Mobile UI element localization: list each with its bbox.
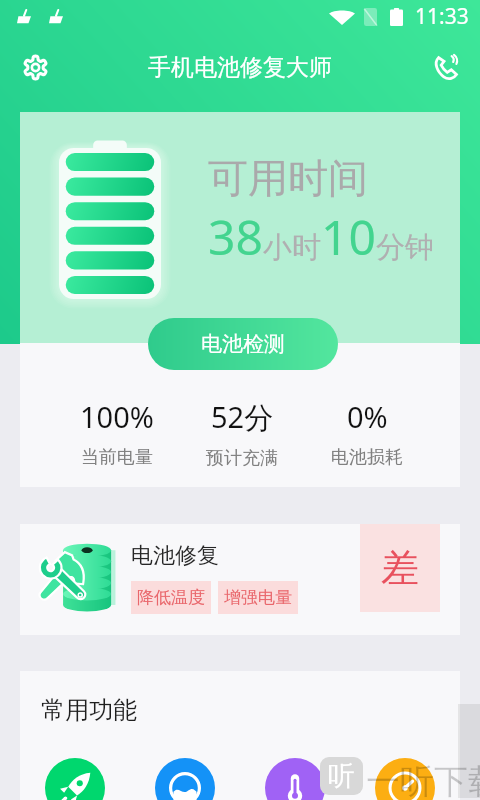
button[interactable]: Cool down	[265, 758, 325, 800]
button[interactable]: Boost	[45, 758, 105, 800]
staticText: 预计充满	[206, 447, 278, 470]
button[interactable]: Call	[422, 44, 468, 90]
button[interactable]: 电池检测	[148, 318, 338, 370]
staticText: 10	[321, 204, 376, 269]
staticText: 52分	[211, 397, 274, 437]
staticText: 100%	[80, 397, 154, 436]
staticText: 分钟	[376, 229, 434, 266]
staticText: 电池修复	[131, 542, 219, 570]
staticText: 差	[381, 544, 419, 592]
staticText: 当前电量	[81, 446, 153, 469]
staticText: 小时	[263, 229, 321, 266]
button[interactable]: Clean	[155, 758, 215, 800]
staticText: 听	[328, 759, 355, 793]
staticText: 0%	[347, 397, 388, 436]
staticText: 电池检测	[201, 331, 285, 357]
staticText: 38	[208, 204, 263, 269]
staticText: 电池损耗	[331, 446, 403, 469]
button[interactable]: 电池修复	[20, 524, 460, 635]
button[interactable]: Speed test	[375, 758, 435, 800]
button[interactable]: Settings	[12, 44, 58, 90]
staticText: 手机电池修复大师	[148, 53, 332, 82]
staticText: 可用时间	[208, 153, 368, 203]
staticText: 降低温度	[137, 587, 205, 608]
staticText: 常用功能	[41, 695, 137, 725]
staticText: 增强电量	[224, 587, 292, 608]
staticText: 一听下载	[366, 760, 480, 800]
staticText: 11:33	[415, 2, 469, 31]
